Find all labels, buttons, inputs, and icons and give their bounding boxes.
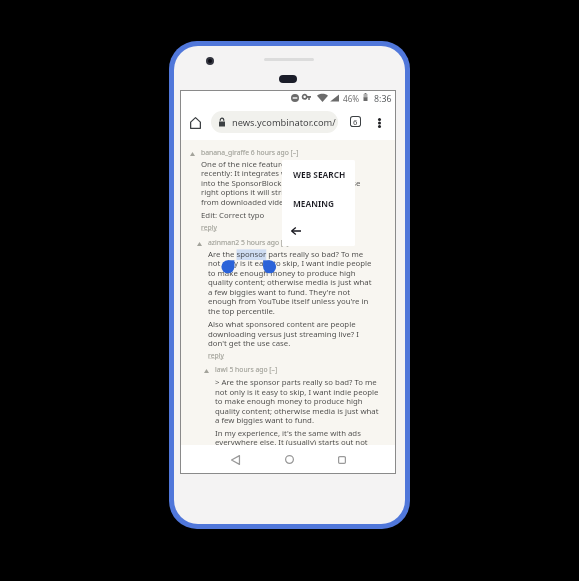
staticText: to make enough money to produce high	[215, 396, 363, 407]
staticText: MEANING	[293, 198, 334, 209]
button[interactable]: More options	[372, 115, 387, 130]
button[interactable]: MEANING	[282, 190, 355, 217]
staticText: quality content; otherwise media is just…	[208, 277, 372, 288]
staticText: downloading versus just streaming live? …	[208, 329, 359, 340]
button[interactable]: azinman2 5 hours ago [–]	[208, 238, 289, 247]
button[interactable]: WEB SEARCH	[282, 160, 355, 190]
button[interactable]: lawl 5 hours ago [–]	[215, 365, 278, 374]
staticText: Are the sponsor parts really so bad? To …	[208, 249, 364, 260]
staticText: 6	[353, 117, 358, 126]
staticText: right options it will strip the sponsor …	[201, 187, 355, 198]
button[interactable]: Home	[187, 115, 203, 131]
staticText: > Are the sponsor parts really so bad? T…	[215, 377, 377, 388]
staticText: a few biggies want to fund. They're not	[208, 287, 351, 298]
staticText: not only is it easy to skip, I want indi…	[215, 387, 379, 398]
staticText: enough from YouTube itself unless you're…	[208, 296, 369, 307]
staticText: 8:36	[374, 93, 392, 105]
staticText: not only is it easy to skip, I want indi…	[208, 258, 372, 269]
staticText: the top percentile.	[208, 306, 275, 317]
button[interactable]: Tabs	[349, 115, 362, 128]
staticText: from downloaded videos.	[201, 197, 294, 208]
staticText: a few biggies want to fund.	[215, 415, 314, 426]
button[interactable]: Recent apps	[322, 445, 362, 473]
button[interactable]: Back	[282, 217, 355, 246]
button[interactable]: banana_giraffe 6 hours ago [–]	[201, 148, 299, 157]
staticText: to make enough money to produce high	[208, 268, 356, 279]
button[interactable]: reply	[201, 223, 217, 232]
staticText: In my experience, it's the same with ads	[215, 428, 361, 439]
staticText: quality content; otherwise media is just…	[215, 406, 379, 417]
button[interactable]: reply	[208, 351, 224, 360]
staticText: don't get the use case.	[208, 338, 291, 349]
staticText: everywhere else. It (usually) starts out…	[215, 437, 368, 445]
button[interactable]: Home	[269, 445, 309, 473]
staticText: Also what sponsored content are people	[208, 319, 356, 330]
button[interactable]: news.ycombinator.com/	[211, 111, 338, 133]
staticText: recently: It integrates with SponsorBloc…	[201, 168, 349, 179]
staticText: One of the nice features that got added	[201, 159, 346, 170]
button[interactable]: Back	[215, 445, 255, 473]
staticText: Edit: Correct typo	[201, 210, 265, 221]
staticText: WEB SEARCH	[293, 169, 346, 180]
staticText: 46%	[343, 93, 360, 104]
staticText: into the SponsorBlock database. With the…	[201, 178, 361, 189]
staticText: news.ycombinator.com/	[232, 116, 336, 129]
